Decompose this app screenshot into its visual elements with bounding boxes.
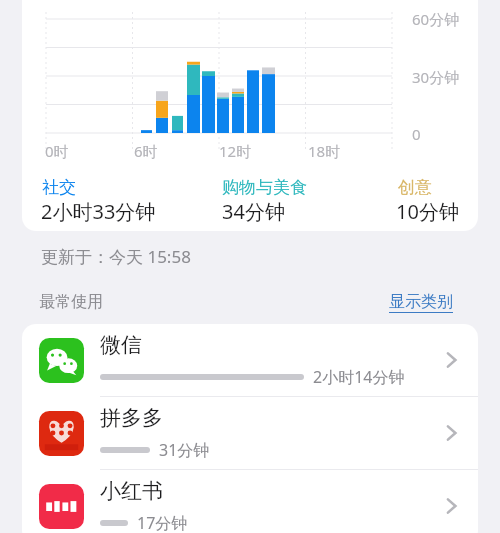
button[interactable]: 查看 小红书 详情	[430, 485, 472, 527]
button[interactable]: 小红书	[22, 470, 478, 533]
staticText: 显示类别	[389, 292, 453, 312]
staticText: 最常使用	[39, 292, 103, 312]
button[interactable]: 查看 拼多多 详情	[430, 412, 472, 454]
staticText: 6时	[134, 141, 158, 161]
staticText: 购物与美食	[222, 177, 307, 198]
button[interactable]	[22, 0, 478, 231]
staticText: 2小时33分钟	[41, 198, 156, 225]
button[interactable]: 微信	[22, 324, 478, 396]
staticText: 34分钟	[222, 198, 285, 225]
staticText: 17分钟	[137, 512, 188, 533]
button[interactable]: 查看 微信 详情	[430, 339, 472, 381]
staticText: 创意	[398, 177, 432, 198]
staticText: 社交	[42, 177, 76, 198]
staticText: 18时	[308, 141, 341, 161]
staticText: 10分钟	[396, 198, 459, 225]
staticText: 微信	[100, 332, 142, 358]
staticText: 30分钟	[412, 67, 460, 87]
staticText: 31分钟	[159, 439, 210, 461]
button[interactable]: 最常使用	[39, 292, 103, 312]
button[interactable]: 显示类别	[389, 292, 453, 313]
staticText: 0时	[45, 141, 69, 161]
button[interactable]: 拼多多	[22, 397, 478, 469]
staticText: 0	[412, 124, 421, 144]
staticText: 60分钟	[412, 9, 460, 29]
staticText: 拼多多	[100, 405, 163, 431]
staticText: 更新于：今天 15:58	[41, 245, 191, 268]
staticText: 小红书	[100, 478, 163, 504]
staticText: 12时	[219, 141, 252, 161]
staticText: 2小时14分钟	[313, 366, 405, 388]
